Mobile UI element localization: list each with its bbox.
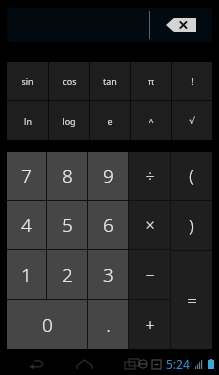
button[interactable]: × [129,201,170,249]
staticText: e [107,115,113,127]
button[interactable]: 9 [88,152,128,200]
button[interactable]: . [88,300,128,349]
button[interactable]: Back [26,356,46,372]
staticText: tan [103,75,117,87]
button[interactable]: log [49,101,89,140]
button[interactable]: Delete [150,8,212,42]
button[interactable]: − [129,250,170,299]
button[interactable]: ln [7,101,48,140]
button[interactable]: ) [171,201,212,250]
staticText: ^ [148,115,154,127]
button[interactable]: 4 [7,201,46,249]
staticText: ln [24,115,32,127]
staticText: cos [62,75,77,87]
staticText: 3 [103,262,114,288]
staticText: π [148,75,154,87]
button[interactable]: ÷ [129,152,170,200]
staticText: 6 [103,212,114,238]
button[interactable]: ( [171,152,212,200]
button[interactable]: + [129,300,170,349]
button[interactable]: sin [7,62,48,100]
staticText: ÷ [145,165,155,187]
button[interactable]: 6 [88,201,128,249]
button[interactable]: 8 [47,152,87,200]
staticText: ) [189,215,194,237]
staticText: 7 [21,163,32,189]
staticText: + [145,314,155,336]
button[interactable]: 5:24 [139,356,214,372]
staticText: 2 [62,262,73,288]
staticText: 5 [62,212,73,238]
staticText: = [187,289,197,312]
staticText: 0 [42,312,53,338]
staticText: 4 [21,212,32,238]
staticText: 8 [62,163,73,189]
button[interactable]: √ [172,101,212,140]
staticText: × [145,214,155,236]
staticText: log [62,115,76,127]
button[interactable]: 5 [47,201,87,249]
button[interactable]: 7 [7,152,46,200]
button[interactable]: tan [90,62,130,100]
staticText: 9 [103,163,114,189]
staticText: 1 [21,262,32,288]
button[interactable]: 1 [7,250,46,299]
staticText: − [145,264,155,286]
staticText: . [106,312,111,338]
button[interactable]: 3 [88,250,128,299]
staticText: ! [191,75,194,87]
button[interactable]: cos [49,62,89,100]
staticText: sin [21,75,34,87]
button[interactable]: e [90,101,130,140]
button[interactable]: 2 [47,250,87,299]
staticText: √ [189,116,195,126]
button[interactable]: = [171,251,212,349]
button[interactable]: Home [74,356,94,372]
button[interactable]: ^ [131,101,171,140]
button[interactable]: Recent apps [122,356,142,372]
button[interactable]: ! [172,62,212,100]
button[interactable]: π [131,62,171,100]
staticText: ( [189,165,194,187]
button[interactable]: 0 [7,300,87,349]
staticText: 5:24 [166,356,190,372]
